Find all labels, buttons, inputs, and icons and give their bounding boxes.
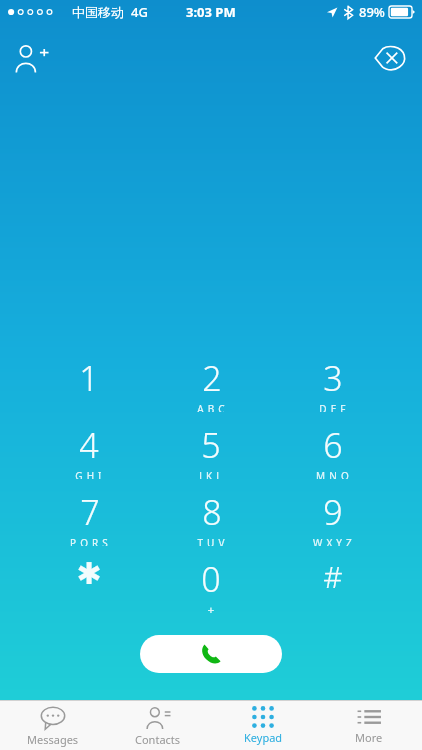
button[interactable]: Call [140,635,282,673]
button[interactable]: More [316,701,422,750]
staticText: ✱ [76,556,102,591]
staticText: More [355,730,383,745]
staticText: 4G [131,3,148,21]
staticText: 0 [201,556,221,602]
staticText: J K L [199,469,223,479]
button[interactable]: Add contact [6,32,58,84]
staticText: G H I [75,469,103,479]
staticText: 4 [79,422,99,468]
staticText: 1 [79,355,99,401]
staticText: + [207,602,216,613]
staticText: 2 [202,355,222,401]
staticText: Keypad [244,730,283,745]
button[interactable]: 1 [28,355,150,412]
button[interactable]: Keypad [210,701,316,750]
button[interactable]: 0 [150,556,272,613]
button[interactable]: # [272,556,394,613]
staticText: # [323,556,343,597]
button[interactable]: 2 [150,355,272,412]
staticText: M N O [316,469,350,479]
button[interactable]: 6 [272,422,394,479]
button[interactable]: Backspace [366,34,414,82]
staticText: A B C [197,402,226,412]
staticText: P Q R S [70,536,109,546]
staticText: D E F [319,402,347,412]
staticText: 5 [201,422,221,468]
button[interactable]: 7 [28,489,150,546]
staticText: 9 [323,489,343,535]
staticText: T U V [197,536,226,546]
staticText: 6 [323,422,343,468]
button[interactable]: Contacts [105,701,210,750]
staticText: 7 [80,489,100,535]
button[interactable]: 5 [150,422,272,479]
button[interactable]: 8 [150,489,272,546]
button[interactable]: 9 [272,489,394,546]
button[interactable]: 4 [28,422,150,479]
button[interactable]: ✱ [28,556,150,613]
staticText: 3:03 PM [186,3,236,21]
staticText: 3 [323,355,343,401]
button[interactable]: 3 [272,355,394,412]
button[interactable]: Messages [0,701,105,750]
staticText: 8 [202,489,222,535]
staticText: Contacts [135,732,181,747]
staticText: W X Y Z [313,536,353,546]
staticText: 89% [359,3,385,21]
staticText: Messages [27,732,79,747]
staticText: 中国移动 [72,4,124,20]
